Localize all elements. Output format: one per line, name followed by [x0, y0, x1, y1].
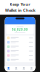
- staticText: $4,820.00: [12, 28, 28, 31]
- button[interactable]: Transaction: [6, 49, 34, 53]
- button[interactable]: Home: [5, 67, 12, 70]
- button[interactable]: Transaction: [6, 53, 34, 58]
- button[interactable]: Stats: [20, 67, 28, 70]
- button[interactable]: Transaction: [6, 36, 34, 40]
- button[interactable]: Transaction: [6, 58, 34, 62]
- button[interactable]: Profile: [28, 67, 35, 70]
- staticText: Keep Your: [9, 2, 30, 7]
- button[interactable]: Transaction: [6, 44, 34, 49]
- button[interactable]: Transaction: [6, 40, 34, 44]
- staticText: Wallet in Check: [5, 7, 35, 13]
- button[interactable]: Cards: [12, 67, 20, 70]
- button[interactable]: Account balance: [6, 25, 34, 34]
